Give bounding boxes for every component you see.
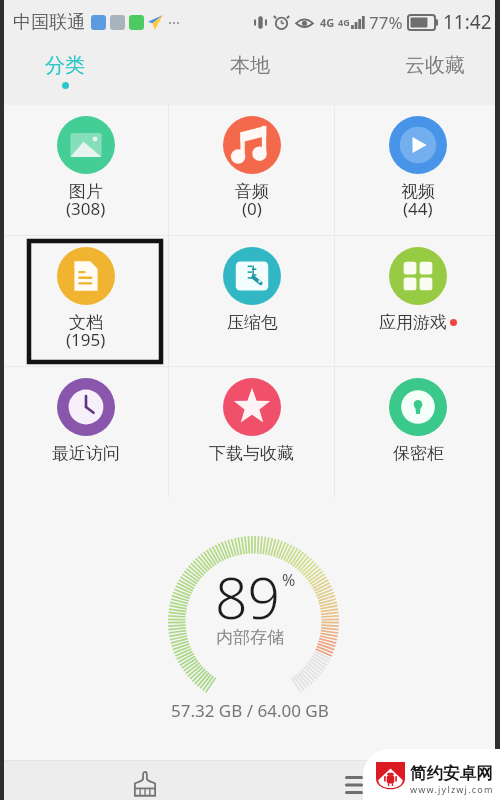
- button[interactable]: Clean: [113, 761, 177, 800]
- staticText: 最近访问: [52, 443, 120, 464]
- button[interactable]: 视频: [335, 105, 500, 235]
- button[interactable]: Menu: [322, 761, 386, 800]
- staticText: 本地: [230, 53, 270, 78]
- staticText: %: [282, 569, 296, 591]
- staticText: 简约安卓网: [410, 763, 493, 784]
- button[interactable]: 应用游戏: [335, 236, 500, 366]
- staticText: ···: [168, 12, 181, 32]
- button[interactable]: 云收藏: [375, 44, 495, 95]
- staticText: (44): [403, 197, 433, 220]
- staticText: 云收藏: [405, 53, 465, 78]
- staticText: 57.32 GB / 64.00 GB: [171, 699, 329, 722]
- staticText: 11:42: [443, 9, 492, 35]
- staticText: 中国联通: [13, 11, 85, 34]
- staticText: www.jylzwj.com: [410, 783, 494, 795]
- button[interactable]: 分类: [5, 44, 125, 95]
- staticText: 4G: [320, 15, 335, 30]
- staticText: 图片: [69, 181, 103, 202]
- staticText: (0): [242, 197, 262, 220]
- button[interactable]: 保密柜: [335, 367, 500, 497]
- button[interactable]: 最近访问: [4, 367, 168, 497]
- staticText: 分类: [45, 53, 85, 78]
- staticText: 音频: [235, 181, 269, 202]
- staticText: (308): [66, 197, 106, 220]
- button[interactable]: 音频: [169, 105, 334, 235]
- staticText: 视频: [401, 181, 435, 202]
- staticText: 保密柜: [393, 443, 444, 464]
- button[interactable]: 图片: [4, 105, 168, 235]
- staticText: 文档: [69, 312, 103, 333]
- staticText: 4G: [338, 16, 350, 28]
- button[interactable]: 文档: [4, 236, 168, 366]
- staticText: 89: [215, 558, 281, 636]
- staticText: 压缩包: [227, 312, 278, 333]
- staticText: (195): [66, 328, 106, 351]
- button[interactable]: 压缩包: [169, 236, 334, 366]
- button[interactable]: 下载与收藏: [169, 367, 334, 497]
- button[interactable]: 本地: [190, 44, 310, 95]
- staticText: 77%: [369, 11, 403, 34]
- staticText: 下载与收藏: [209, 443, 294, 464]
- staticText: 应用游戏: [379, 312, 447, 333]
- staticText: 内部存储: [216, 627, 284, 648]
